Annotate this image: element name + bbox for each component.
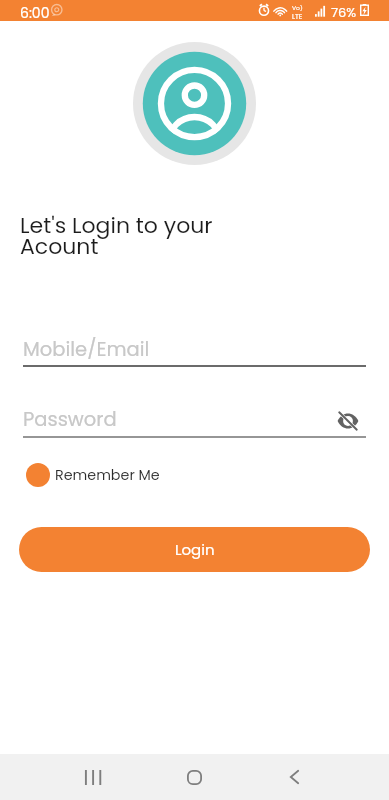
button[interactable]: Mobile/Email: [23, 336, 366, 368]
staticText: Vo): [292, 4, 303, 12]
button[interactable]: Remember Me: [26, 463, 160, 487]
staticText: Mobile/Email: [23, 336, 150, 363]
button[interactable]: Home: [170, 754, 219, 800]
staticText: 76%: [331, 3, 357, 21]
staticText: Login: [175, 539, 215, 560]
button[interactable]: Show password: [335, 408, 361, 434]
staticText: Let's Login to your Acount: [20, 210, 213, 262]
staticText: LTE: [292, 12, 303, 22]
button[interactable]: Back: [270, 754, 319, 800]
staticText: Password: [23, 406, 117, 433]
staticText: Remember Me: [55, 465, 160, 485]
button[interactable]: Recent apps: [68, 754, 117, 800]
button[interactable]: Password: [23, 406, 366, 438]
button[interactable]: Login: [19, 527, 370, 572]
staticText: 6:00: [20, 3, 50, 23]
